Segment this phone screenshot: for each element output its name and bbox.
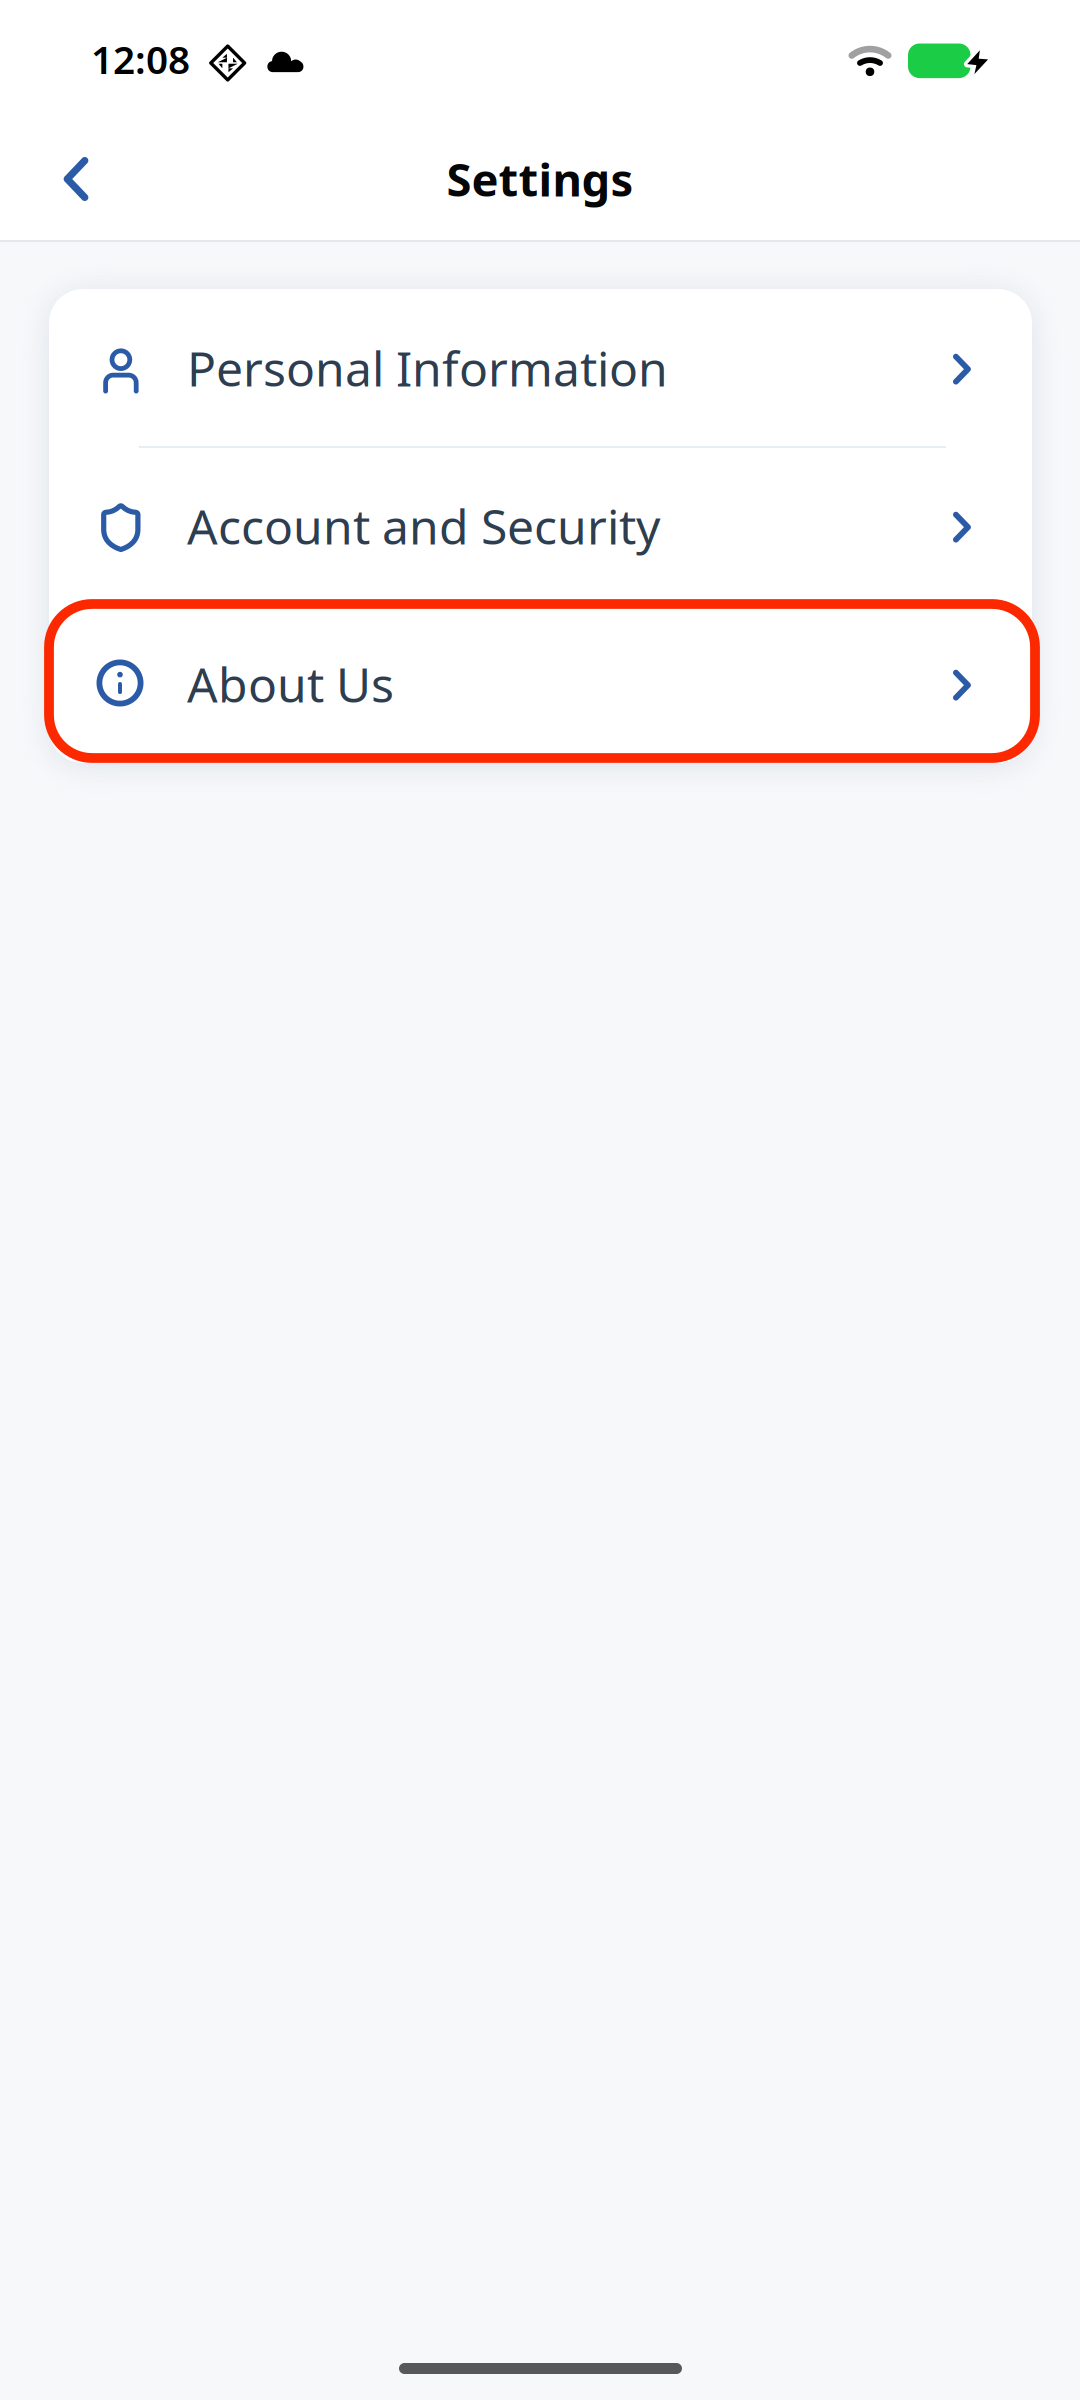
staticText: Account and Security	[187, 494, 660, 558]
button[interactable]: Back	[37, 140, 115, 218]
staticText: 12:08	[91, 33, 190, 85]
staticText: About Us	[187, 652, 394, 716]
button[interactable]: About Us	[49, 605, 1032, 763]
staticText: Settings	[446, 149, 633, 209]
button[interactable]: Account and Security	[49, 447, 1032, 605]
staticText: Personal Information	[187, 336, 668, 400]
button[interactable]: Personal Information	[49, 289, 1032, 447]
